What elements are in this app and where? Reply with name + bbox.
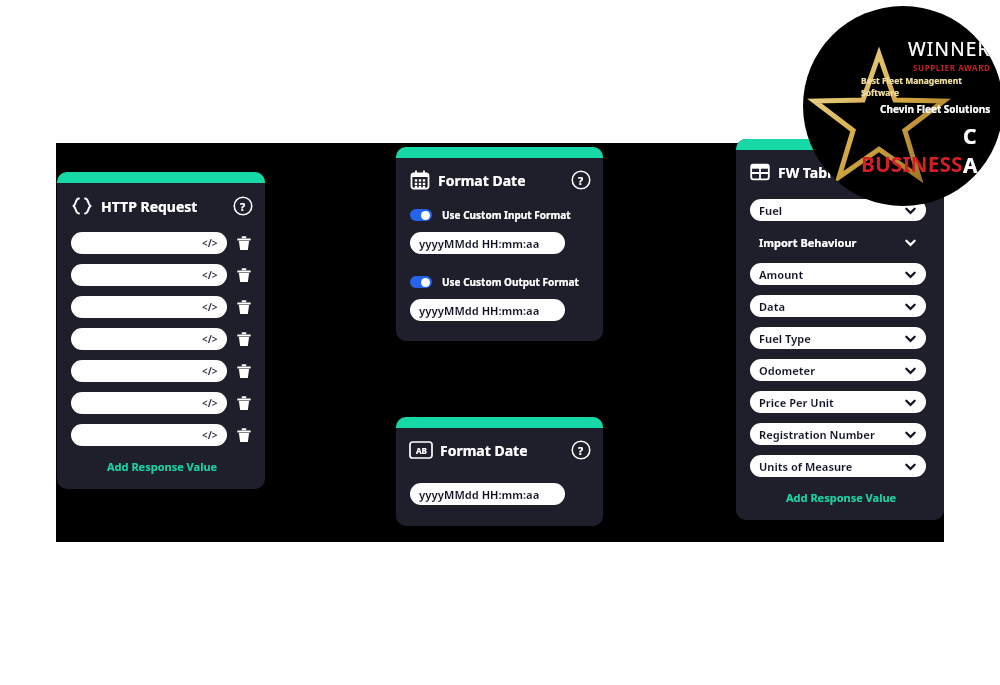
staticText: ?	[240, 199, 246, 214]
staticText: AB	[416, 445, 427, 456]
staticText: Best Fleet Management Software	[861, 75, 991, 99]
staticText: BUSINESS	[861, 150, 963, 179]
button[interactable]: Toggle	[410, 209, 432, 221]
button[interactable]: Delete	[234, 393, 253, 413]
button[interactable]: </>	[71, 264, 227, 286]
staticText: Add Response Value	[786, 490, 897, 505]
staticText: Registration Number	[759, 427, 875, 442]
button[interactable]: Data	[750, 295, 926, 317]
button[interactable]: Help	[233, 196, 253, 216]
button[interactable]: </>	[71, 232, 227, 254]
button[interactable]: yyyyMMdd HH:mm:aa	[410, 483, 565, 505]
staticText: Data	[759, 299, 786, 314]
staticText: </>	[202, 236, 218, 250]
staticText: Price Per Unit	[759, 395, 834, 410]
button[interactable]: Fuel Type	[750, 327, 926, 349]
button[interactable]: Toggle	[410, 276, 432, 288]
staticText: yyyyMMdd HH:mm:aa	[419, 236, 540, 251]
button[interactable]: Delete	[234, 265, 253, 285]
button[interactable]: Add Response Value	[780, 487, 903, 508]
button[interactable]: Delete	[234, 329, 253, 349]
staticText: Add Response Value	[107, 459, 218, 474]
staticText: Format Date	[438, 171, 526, 190]
button[interactable]: Price Per Unit	[750, 391, 926, 413]
staticText: Units of Measure	[759, 459, 853, 474]
staticText: SUPPLIER AWARD	[913, 62, 991, 73]
button[interactable]: </>	[71, 424, 227, 446]
staticText: Use Custom Output Format	[442, 275, 579, 289]
button[interactable]: Delete	[234, 361, 253, 381]
staticText: FW Table	[778, 163, 840, 182]
staticText: CAR	[963, 122, 991, 206]
staticText: </>	[202, 428, 218, 442]
button[interactable]: Help	[571, 170, 591, 190]
button[interactable]: Delete	[234, 233, 253, 253]
staticText: Use Custom Input Format	[442, 208, 571, 222]
button[interactable]: Delete	[234, 297, 253, 317]
button[interactable]: yyyyMMdd HH:mm:aa	[410, 299, 565, 321]
staticText: Fuel Type	[759, 331, 811, 346]
staticText: </>	[202, 364, 218, 378]
staticText: Import Behaviour	[759, 235, 857, 250]
button[interactable]: Units of Measure	[750, 455, 926, 477]
button[interactable]: Import Behaviour	[750, 231, 926, 253]
button[interactable]: Delete	[234, 425, 253, 445]
staticText: </>	[202, 332, 218, 346]
staticText: WINNER	[908, 36, 991, 62]
staticText: yyyyMMdd HH:mm:aa	[419, 487, 540, 502]
staticText: Chevin Fleet Solutions	[880, 102, 991, 116]
button[interactable]: Fuel	[750, 199, 926, 221]
button[interactable]: Odometer	[750, 359, 926, 381]
button[interactable]: </>	[71, 392, 227, 414]
staticText: yyyyMMdd HH:mm:aa	[419, 303, 540, 318]
button[interactable]: </>	[71, 360, 227, 382]
staticText: HTTP Request	[101, 197, 198, 216]
button[interactable]: </>	[71, 328, 227, 350]
staticText: Amount	[759, 267, 804, 282]
button[interactable]: Add Response Value	[101, 456, 224, 477]
button[interactable]: Help	[571, 440, 591, 460]
staticText: Format Date	[440, 441, 528, 460]
button[interactable]: Amount	[750, 263, 926, 285]
staticText: </>	[202, 396, 218, 410]
staticText: </>	[202, 300, 218, 314]
staticText: ?	[578, 173, 584, 188]
button[interactable]: Registration Number	[750, 423, 926, 445]
button[interactable]: yyyyMMdd HH:mm:aa	[410, 232, 565, 254]
button[interactable]: </>	[71, 296, 227, 318]
staticText: ?	[578, 443, 584, 458]
staticText: Odometer	[759, 363, 816, 378]
staticText: </>	[202, 268, 218, 282]
staticText: Fuel	[759, 203, 783, 218]
